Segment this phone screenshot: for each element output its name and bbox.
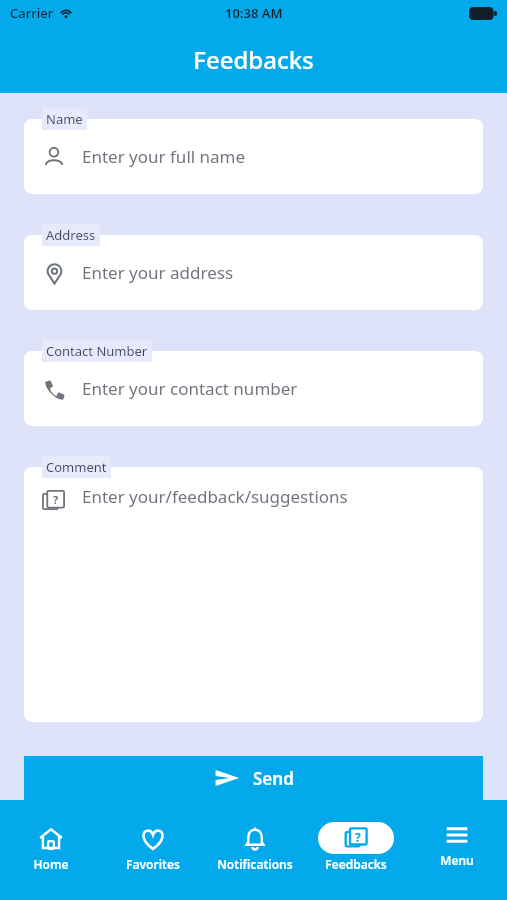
staticText: Favorites	[126, 856, 180, 872]
staticText: ?	[53, 492, 59, 507]
button[interactable]: Favorites	[102, 800, 204, 872]
button[interactable]: ?	[24, 467, 483, 722]
staticText: Carrier	[10, 4, 54, 22]
staticText: Feedbacks	[193, 43, 314, 76]
staticText: Enter your full name	[82, 145, 246, 168]
button[interactable]: Menu	[406, 800, 507, 868]
button[interactable]: Home	[0, 800, 102, 872]
button[interactable]: Enter your address	[24, 235, 483, 310]
staticText: Enter your/feedback/suggestions	[82, 485, 348, 508]
button[interactable]: Notifications	[204, 800, 305, 872]
staticText: Home	[33, 856, 69, 872]
other: Home	[38, 826, 64, 852]
staticText: Enter your address	[82, 261, 234, 284]
staticText: Address	[46, 226, 96, 244]
staticText: Enter your contact number	[82, 377, 298, 400]
button[interactable]: Enter your contact number	[24, 351, 483, 426]
staticText: Contact Number	[46, 342, 148, 360]
other: Favorites	[140, 826, 166, 852]
staticText: 10:38 AM	[225, 4, 283, 22]
button[interactable]: Send	[24, 756, 483, 800]
staticText: Menu	[440, 852, 474, 868]
button[interactable]: ?	[305, 800, 406, 872]
other: Notifications	[242, 826, 268, 852]
staticText: Comment	[46, 458, 107, 476]
button[interactable]: Enter your full name	[24, 119, 483, 194]
other: Menu	[444, 822, 470, 848]
staticText: Send	[253, 767, 294, 790]
staticText: ?	[355, 829, 361, 845]
staticText: Notifications	[217, 856, 293, 872]
staticText: Name	[46, 110, 83, 128]
staticText: Feedbacks	[325, 856, 387, 872]
